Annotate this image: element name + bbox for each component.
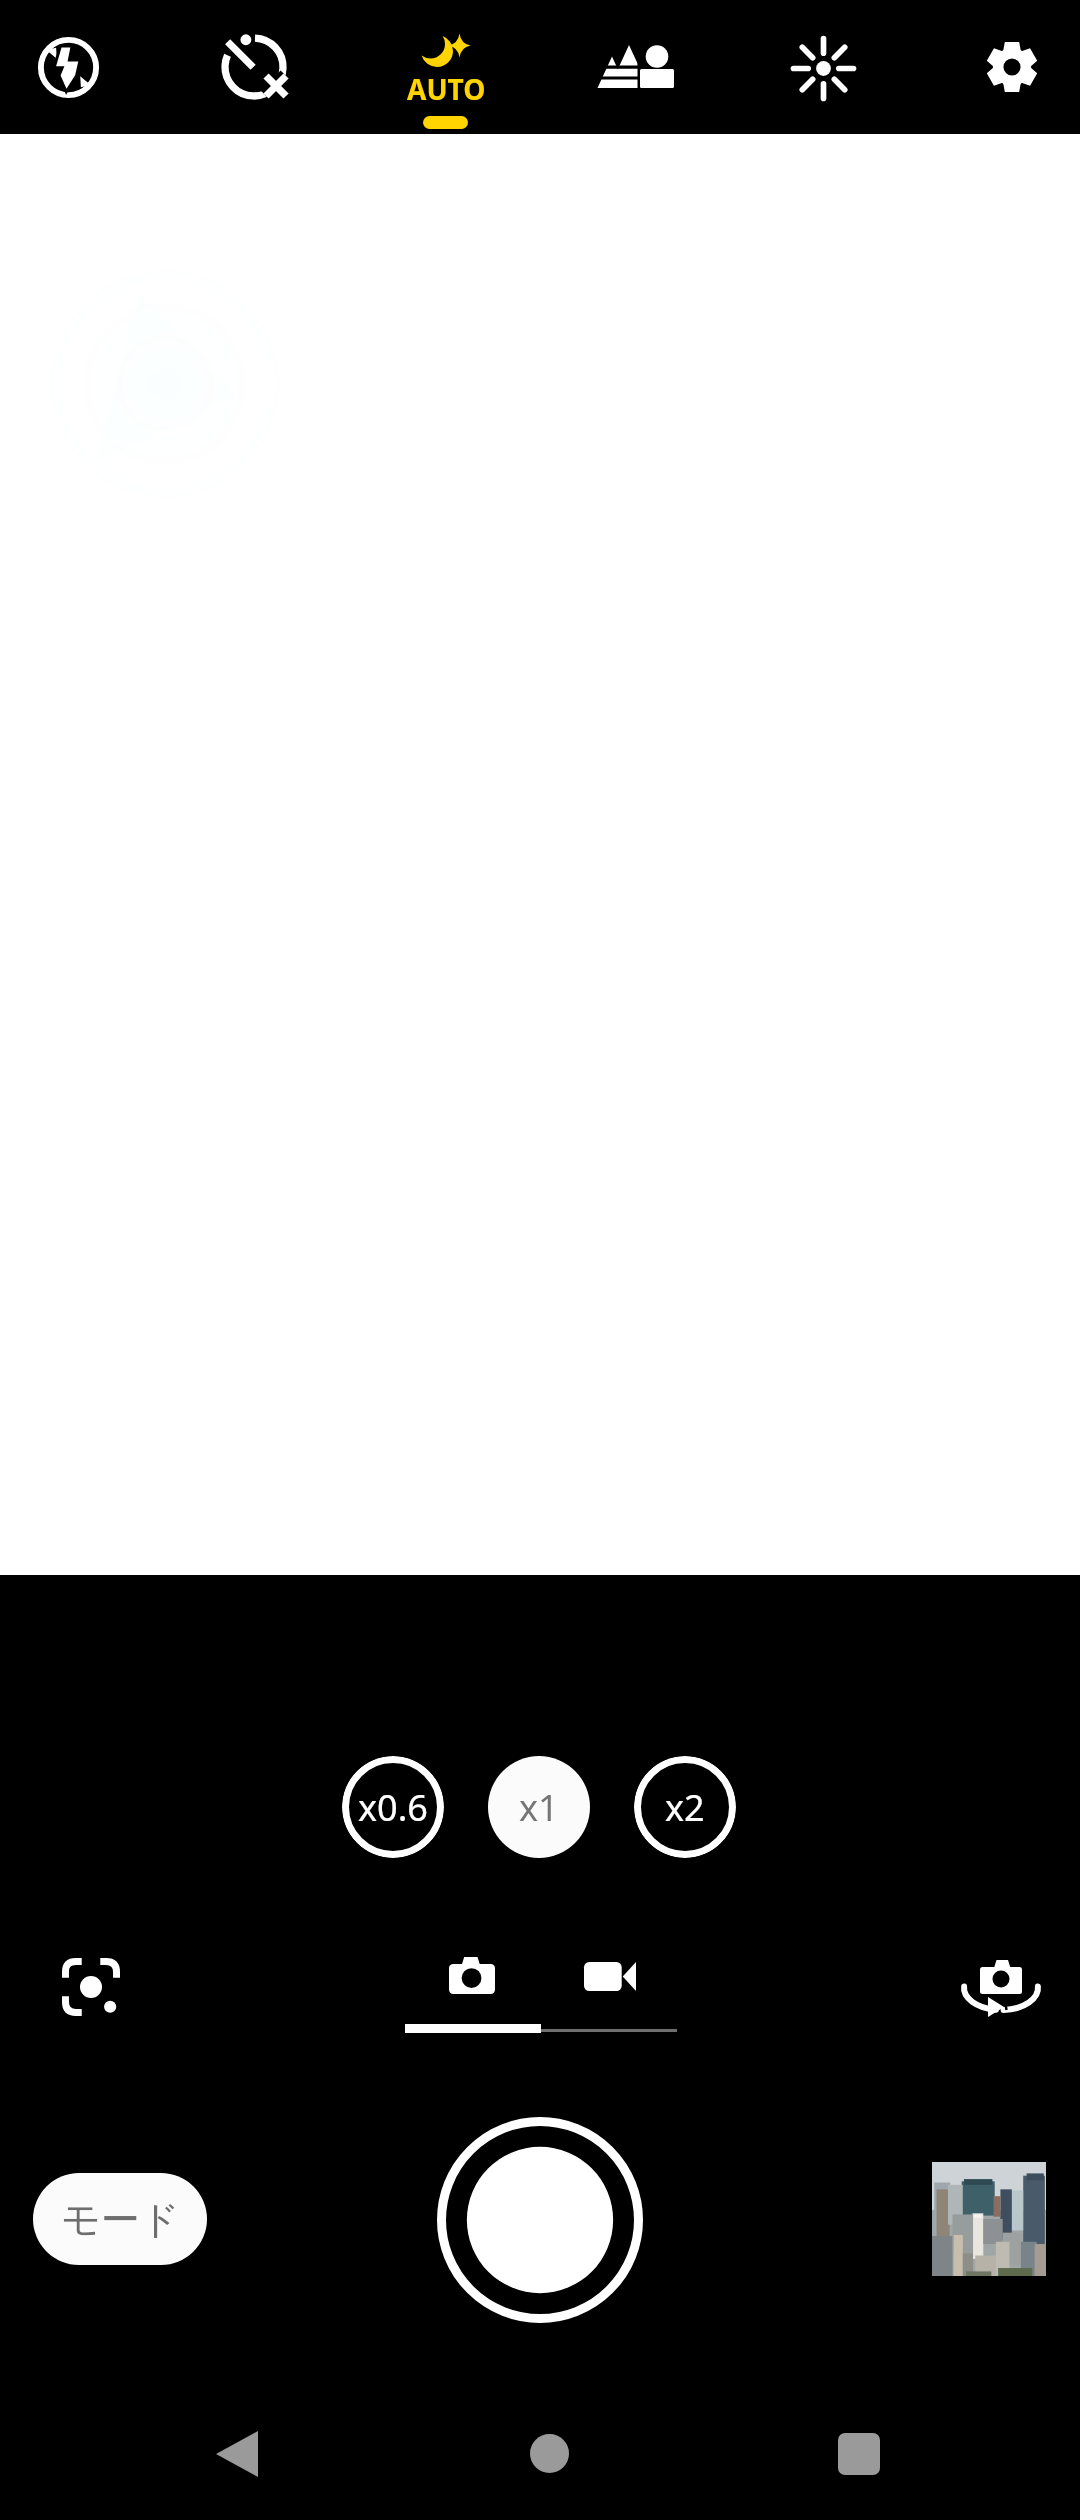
button[interactable]: Settings [922,0,1080,134]
button[interactable]: Video mode [555,1921,665,2031]
button[interactable]: x1 [488,1756,590,1858]
button[interactable]: Brightness [733,1,913,135]
button[interactable]: x0.6 [342,1756,444,1858]
button[interactable]: モード [33,2173,207,2265]
button[interactable]: Photo mode [417,1920,527,2030]
staticText: AUTO [407,70,486,108]
button[interactable]: Night mode auto [355,0,535,134]
button[interactable]: Switch camera [946,1932,1056,2042]
button[interactable]: Scene recognition [545,0,725,133]
button[interactable]: Recents [789,2381,929,2520]
button[interactable]: Home [479,2381,619,2520]
button[interactable]: x2 [634,1756,736,1858]
staticText: x1 [519,1783,559,1832]
button[interactable]: Lens [36,1932,146,2042]
button[interactable]: Shutter [437,2117,643,2323]
staticText: モード [61,2195,180,2244]
button[interactable]: Self timer off [164,0,344,134]
staticText: x2 [665,1783,705,1832]
button[interactable]: Flash off [0,0,158,134]
staticText: x0.6 [358,1783,428,1832]
button[interactable]: Gallery [932,2162,1046,2276]
button[interactable]: Back [167,2381,307,2520]
